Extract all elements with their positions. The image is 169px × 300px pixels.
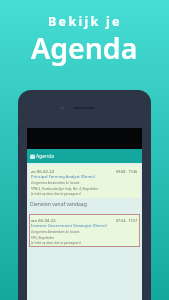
staticText: wo 06-04-22	[31, 217, 56, 223]
other: Agenda	[30, 154, 35, 159]
staticText: Je hebt op deze dienst gereageerd	[31, 192, 81, 196]
staticText: Diensten vanaf vandaag	[30, 201, 87, 208]
staticText: Zorgcentra Amsterdam 3e locatie	[31, 181, 80, 185]
staticText: Zorgcentra Amsterdam 3e locatie	[31, 230, 80, 234]
button[interactable]: zo 06-02-22	[29, 165, 140, 198]
staticText: 09:08 - 17:46	[116, 169, 138, 174]
staticText: 07:04 - 17:57	[116, 218, 138, 223]
staticText: Agenda	[36, 153, 55, 160]
staticText: Je hebt op deze dienst gereageerd	[31, 241, 81, 245]
staticText: SPH, Begeleider	[31, 236, 55, 240]
staticText: SPW 4, Huisbouderijtje hulp, Niv. 4, Beg…	[31, 187, 99, 191]
staticText: Agenda	[31, 29, 138, 68]
button[interactable]: Agenda	[27, 149, 142, 163]
staticText: Bekijk je	[48, 13, 122, 30]
staticText: Investor Government Strategist (Demo)	[31, 223, 107, 229]
staticText: zo 06-02-22	[31, 168, 55, 174]
staticText: Principal Farming Analyst (Demo)	[31, 174, 95, 180]
button[interactable]: wo 06-04-22	[29, 214, 140, 247]
